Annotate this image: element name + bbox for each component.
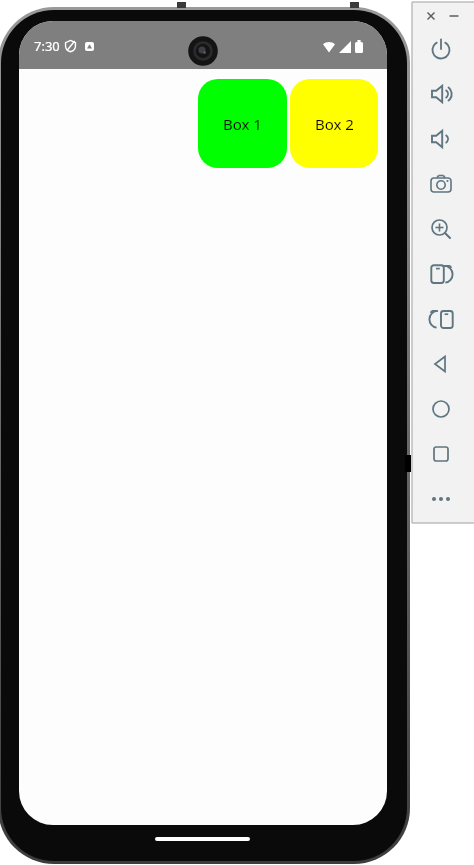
button[interactable] [427, 350, 455, 378]
staticText: 7:30 [34, 37, 60, 55]
button[interactable] [422, 7, 440, 25]
button[interactable] [427, 35, 455, 63]
button[interactable] [427, 440, 455, 468]
staticText: Box 1 [223, 114, 262, 134]
button[interactable] [427, 170, 455, 198]
button[interactable] [427, 80, 455, 108]
button[interactable] [427, 305, 455, 333]
button[interactable] [445, 7, 463, 25]
button[interactable] [427, 395, 455, 423]
button[interactable] [427, 260, 455, 288]
button[interactable]: Box 1 [198, 79, 287, 168]
staticText: Box 2 [315, 114, 354, 134]
button[interactable] [427, 215, 455, 243]
button[interactable] [427, 485, 455, 513]
button[interactable]: Box 2 [290, 79, 378, 168]
button[interactable] [427, 125, 455, 153]
